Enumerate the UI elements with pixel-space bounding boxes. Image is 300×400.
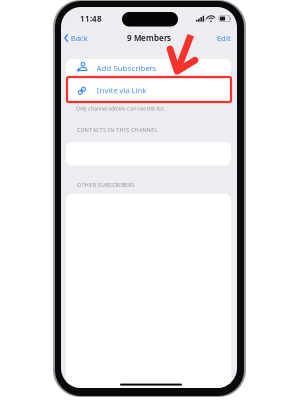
button[interactable]: Add Subscribers bbox=[66, 59, 231, 78]
staticText: Back bbox=[71, 33, 88, 43]
staticText: Only channel admins can see this list. bbox=[76, 105, 165, 112]
button[interactable]: Invite via Link bbox=[66, 79, 231, 102]
button[interactable]: Back bbox=[64, 32, 110, 44]
staticText: Invite via Link bbox=[96, 85, 146, 95]
button[interactable]: Edit bbox=[200, 32, 231, 44]
staticText: 9 Members bbox=[127, 33, 171, 43]
staticText: Add Subscribers bbox=[96, 63, 156, 73]
staticText: CONTACTS IN THIS CHANNEL bbox=[77, 126, 158, 134]
staticText: OTHER SUBSCRIBERS bbox=[77, 181, 135, 189]
staticText: 11:48 bbox=[80, 13, 102, 24]
staticText: Edit bbox=[217, 33, 231, 43]
